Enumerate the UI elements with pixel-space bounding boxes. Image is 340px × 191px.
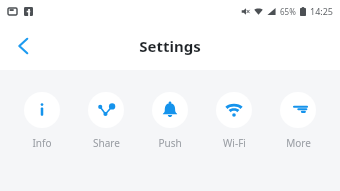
button[interactable]: Back xyxy=(2,24,46,68)
button[interactable]: Info xyxy=(12,90,72,152)
staticText: Wi-Fi xyxy=(223,136,246,150)
staticText: 65% xyxy=(280,6,296,17)
staticText: Push xyxy=(158,136,182,150)
staticText: Info xyxy=(32,136,52,150)
staticText: Settings xyxy=(139,36,201,56)
staticText: More xyxy=(286,136,311,150)
button[interactable]: More xyxy=(268,90,328,152)
button[interactable]: Share xyxy=(76,90,136,152)
button[interactable]: Push xyxy=(140,90,200,152)
button[interactable]: Wi-Fi xyxy=(204,90,264,152)
staticText: Share xyxy=(93,136,120,150)
staticText: 14:25 xyxy=(310,5,334,17)
